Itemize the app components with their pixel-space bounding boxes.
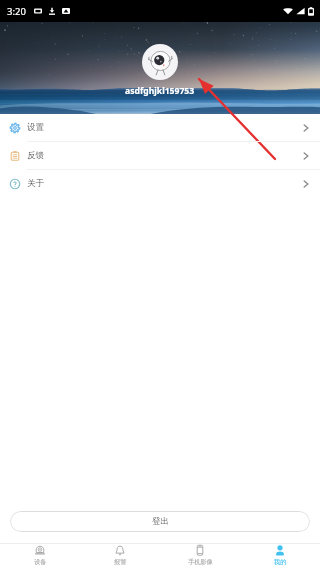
staticText: 反馈: [27, 150, 44, 161]
button[interactable]: 手机影像: [160, 544, 240, 568]
staticText: 关于: [27, 178, 44, 189]
staticText: 我的: [274, 558, 287, 566]
staticText: 手机影像: [188, 558, 213, 566]
staticText: asdfghjkl159753: [125, 85, 195, 97]
staticText: 设置: [27, 122, 44, 133]
staticText: 设备: [34, 558, 47, 566]
button[interactable]: 关于: [0, 170, 320, 197]
button[interactable]: 反馈: [0, 142, 320, 169]
button[interactable]: 登出: [10, 511, 310, 532]
staticText: 3:20: [7, 5, 26, 18]
staticText: 登出: [152, 516, 169, 527]
button[interactable]: 设置: [0, 114, 320, 141]
staticText: 报警: [114, 558, 127, 566]
button[interactable]: Avatar: [142, 44, 178, 80]
button[interactable]: 报警: [80, 544, 160, 568]
button[interactable]: 我的: [240, 544, 320, 568]
button[interactable]: 设备: [0, 544, 80, 568]
